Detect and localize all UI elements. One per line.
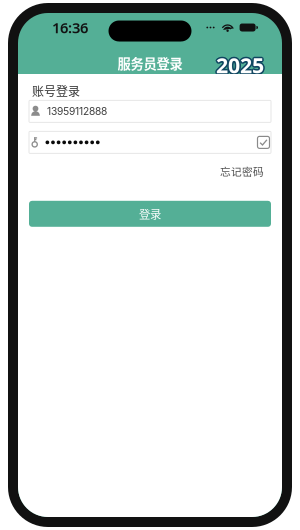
staticText: 服务员登录 <box>117 53 182 73</box>
staticText: 2025 <box>215 50 263 78</box>
staticText: 登录 <box>139 206 161 222</box>
staticText: 2025 <box>216 51 264 79</box>
staticText: 2025 <box>217 50 265 78</box>
staticText: 2025 <box>214 51 262 79</box>
staticText: 2025 <box>217 51 265 79</box>
staticText: 账号登录 <box>32 82 80 99</box>
staticText: 2025 <box>215 52 263 80</box>
staticText: 2025 <box>217 52 265 80</box>
staticText: 13959112888 <box>47 105 107 117</box>
button[interactable]: 登录 <box>29 201 271 227</box>
staticText: 16:36 <box>52 18 88 37</box>
button[interactable]: 忘记密码 <box>220 163 264 179</box>
staticText: 2025 <box>216 49 264 78</box>
staticText: 2025 <box>216 52 264 81</box>
staticText: 忘记密码 <box>220 163 264 179</box>
